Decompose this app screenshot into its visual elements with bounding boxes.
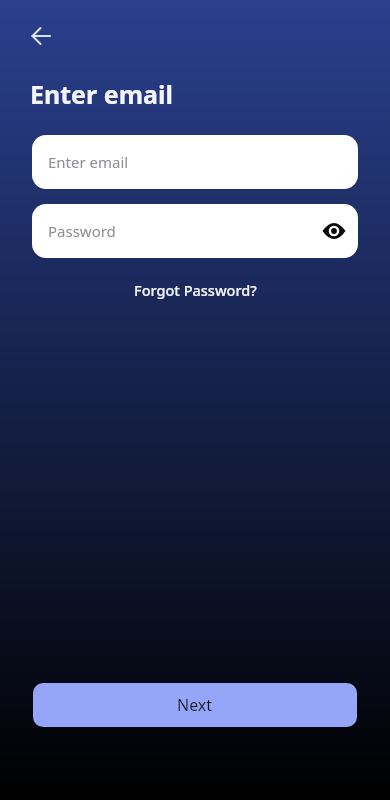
button[interactable] bbox=[322, 219, 346, 243]
staticText: Enter email bbox=[48, 152, 129, 172]
button[interactable] bbox=[29, 24, 53, 48]
button[interactable]: Password bbox=[32, 204, 358, 258]
button[interactable]: Forgot Password? bbox=[134, 280, 257, 300]
staticText: Password bbox=[48, 221, 116, 241]
button[interactable]: Next bbox=[33, 683, 357, 727]
staticText: Enter email bbox=[30, 77, 173, 111]
staticText: Next bbox=[177, 694, 213, 716]
button[interactable]: Enter email bbox=[32, 135, 358, 189]
